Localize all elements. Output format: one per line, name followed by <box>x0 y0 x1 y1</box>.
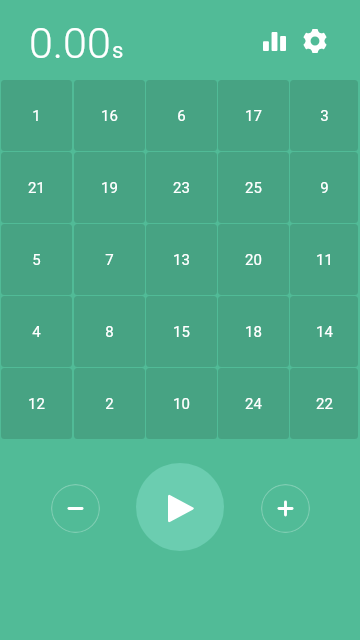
staticText: 10 <box>173 395 190 413</box>
staticText: 16 <box>101 107 118 125</box>
staticText: 11 <box>316 251 333 269</box>
button[interactable]: 13 <box>146 224 217 295</box>
staticText: 19 <box>101 179 118 197</box>
staticText: 22 <box>316 395 333 413</box>
button[interactable]: 9 <box>290 152 358 223</box>
staticText: 2 <box>105 395 114 413</box>
button[interactable]: 8 <box>74 296 145 367</box>
staticText: 14 <box>316 323 333 341</box>
button[interactable]: Increase grid size <box>261 484 310 533</box>
staticText: 23 <box>173 179 190 197</box>
button[interactable]: 17 <box>218 80 289 151</box>
button[interactable]: 3 <box>290 80 358 151</box>
staticText: 13 <box>173 251 190 269</box>
button[interactable]: 21 <box>1 152 72 223</box>
button[interactable]: Decrease grid size <box>51 484 100 533</box>
button[interactable]: Start <box>136 463 224 551</box>
button[interactable]: 11 <box>290 224 358 295</box>
staticText: 1 <box>32 107 41 125</box>
staticText: 24 <box>245 395 262 413</box>
button[interactable]: 18 <box>218 296 289 367</box>
staticText: 25 <box>245 179 262 197</box>
staticText: 8 <box>105 323 114 341</box>
staticText: 17 <box>245 107 262 125</box>
staticText: 0.00 <box>29 18 111 68</box>
staticText: 21 <box>28 179 45 197</box>
button[interactable]: 22 <box>290 368 358 439</box>
button[interactable]: 23 <box>146 152 217 223</box>
staticText: 12 <box>28 395 45 413</box>
staticText: 4 <box>32 323 41 341</box>
button[interactable]: Statistics <box>254 21 294 61</box>
button[interactable]: Settings <box>295 21 335 61</box>
staticText: 15 <box>173 323 190 341</box>
staticText: 18 <box>245 323 262 341</box>
button[interactable]: 12 <box>1 368 72 439</box>
staticText: 7 <box>105 251 114 269</box>
button[interactable]: 24 <box>218 368 289 439</box>
button[interactable]: 16 <box>74 80 145 151</box>
button[interactable]: 2 <box>74 368 145 439</box>
staticText: s <box>112 38 124 64</box>
button[interactable]: 20 <box>218 224 289 295</box>
staticText: 9 <box>320 179 329 197</box>
button[interactable]: 5 <box>1 224 72 295</box>
button[interactable]: 1 <box>1 80 72 151</box>
button[interactable]: 7 <box>74 224 145 295</box>
button[interactable]: 6 <box>146 80 217 151</box>
staticText: 3 <box>320 107 329 125</box>
button[interactable]: 10 <box>146 368 217 439</box>
button[interactable]: 25 <box>218 152 289 223</box>
staticText: 20 <box>245 251 262 269</box>
button[interactable]: 14 <box>290 296 358 367</box>
button[interactable]: 4 <box>1 296 72 367</box>
button[interactable]: 15 <box>146 296 217 367</box>
staticText: 6 <box>177 107 186 125</box>
staticText: 5 <box>32 251 41 269</box>
button[interactable]: 19 <box>74 152 145 223</box>
